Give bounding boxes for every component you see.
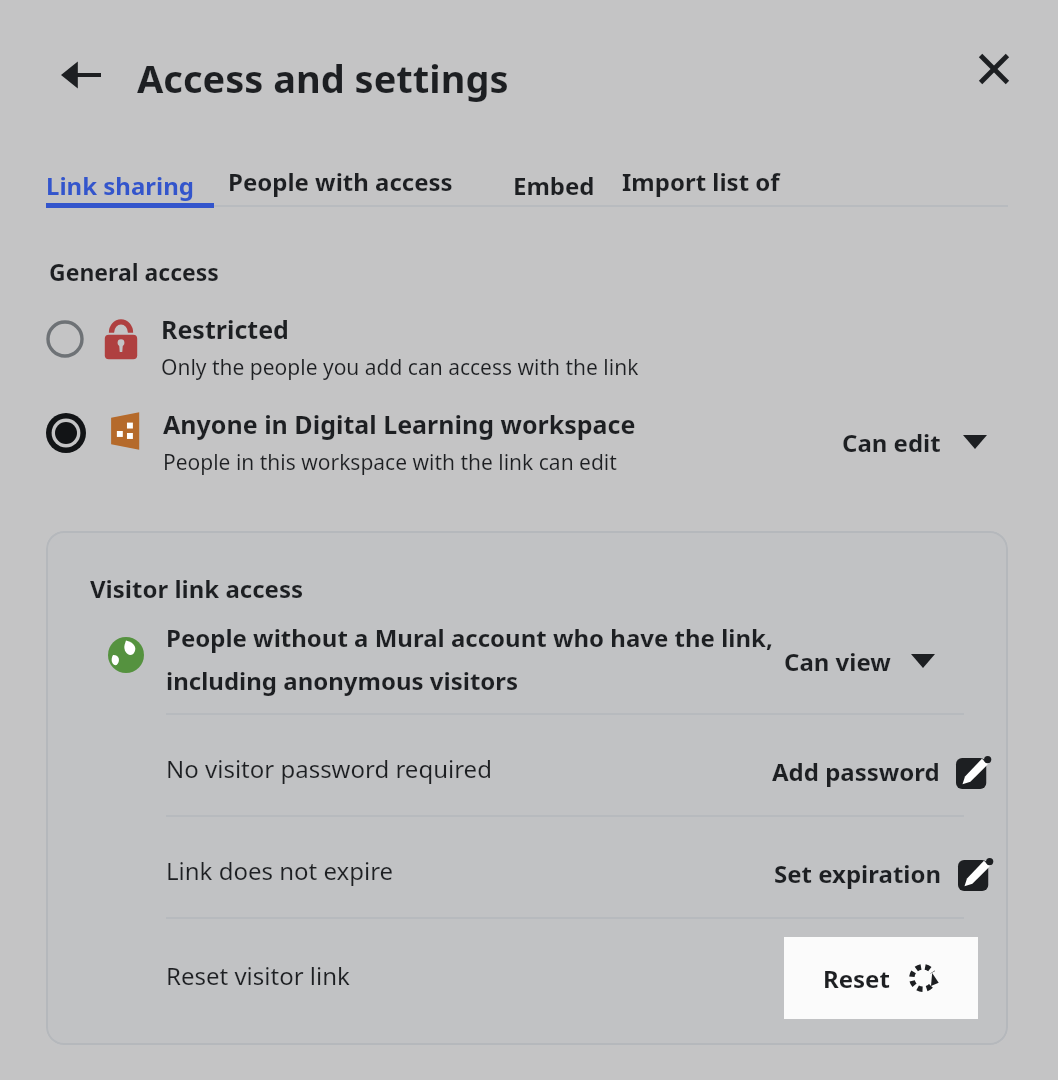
staticText: including anonymous visitors [166,664,519,697]
staticText: Embed [513,169,595,202]
staticText: Reset visitor link [166,959,350,992]
button[interactable]: Anyone in Digital Learning workspace [46,407,806,487]
staticText: Anyone in Digital Learning workspace [163,407,636,441]
button[interactable]: Close [962,38,1026,100]
staticText: Link sharing [46,169,195,202]
button[interactable]: Restricted [46,312,746,390]
staticText: Reset [823,962,890,995]
button[interactable]: Reset [784,937,978,1019]
button[interactable]: Link sharing [46,165,214,205]
button[interactable]: Can edit [842,420,987,464]
button[interactable]: People with access (11) [228,165,486,205]
staticText: Link does not expire [166,854,394,887]
staticText: General access [49,256,219,287]
button[interactable]: Set expiration [774,851,994,895]
button[interactable]: Import list of emails [622,165,850,205]
staticText: Can view [784,645,891,678]
button[interactable]: Embed [513,165,595,205]
staticText: Import list of emails [622,165,850,205]
staticText: Visitor link access [90,572,303,605]
staticText: Set expiration [774,857,942,890]
staticText: People in this workspace with the link c… [163,448,617,477]
button[interactable]: Add password [772,749,992,793]
button[interactable]: Can view [784,639,935,683]
staticText: Add password [772,755,940,788]
staticText: Restricted [161,312,289,346]
button[interactable]: Back [50,46,112,104]
staticText: Access and settings [137,52,509,104]
staticText: No visitor password required [166,752,492,785]
staticText: Can edit [842,426,941,459]
staticText: Only the people you add can access with … [161,353,639,382]
staticText: People with access (11) [228,165,486,205]
staticText: People without a Mural account who have … [166,621,773,654]
